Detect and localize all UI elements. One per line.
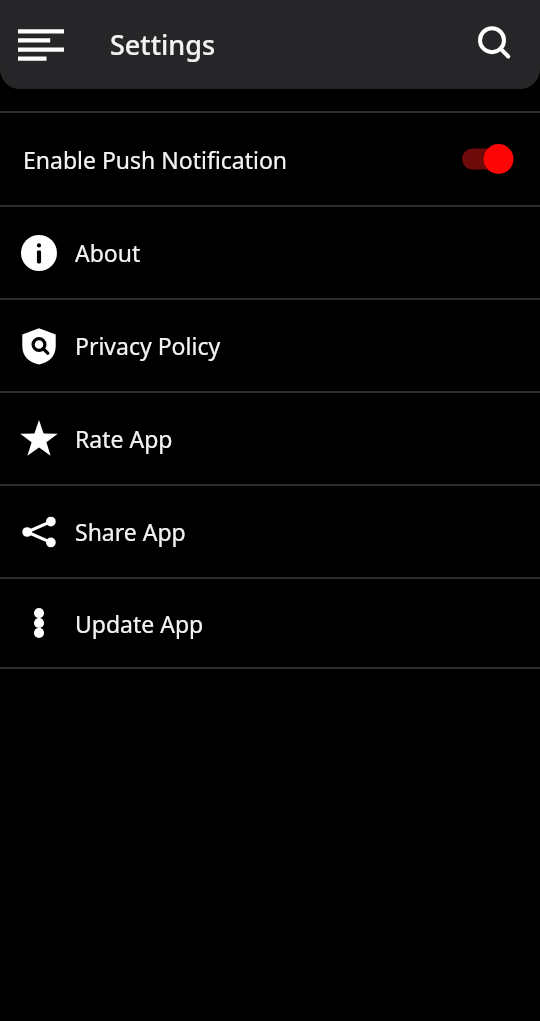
button[interactable]: Privacy Policy <box>0 300 540 391</box>
button[interactable]: Update App <box>0 579 540 667</box>
staticText: Privacy Policy <box>75 330 221 361</box>
staticText: Enable Push Notification <box>23 144 288 175</box>
staticText: About <box>75 237 141 268</box>
button[interactable]: Rate App <box>0 393 540 484</box>
button[interactable]: Enable Push Notification <box>0 113 540 205</box>
button[interactable]: Open navigation menu <box>10 14 72 76</box>
staticText: Settings <box>110 26 216 63</box>
staticText: Update App <box>75 608 204 639</box>
button[interactable]: Search <box>464 13 528 77</box>
button[interactable]: Share App <box>0 486 540 577</box>
button[interactable]: About <box>0 207 540 298</box>
staticText: Rate App <box>75 423 173 454</box>
button[interactable]: Enable Push Notification toggle <box>462 142 518 176</box>
staticText: Share App <box>75 516 186 547</box>
